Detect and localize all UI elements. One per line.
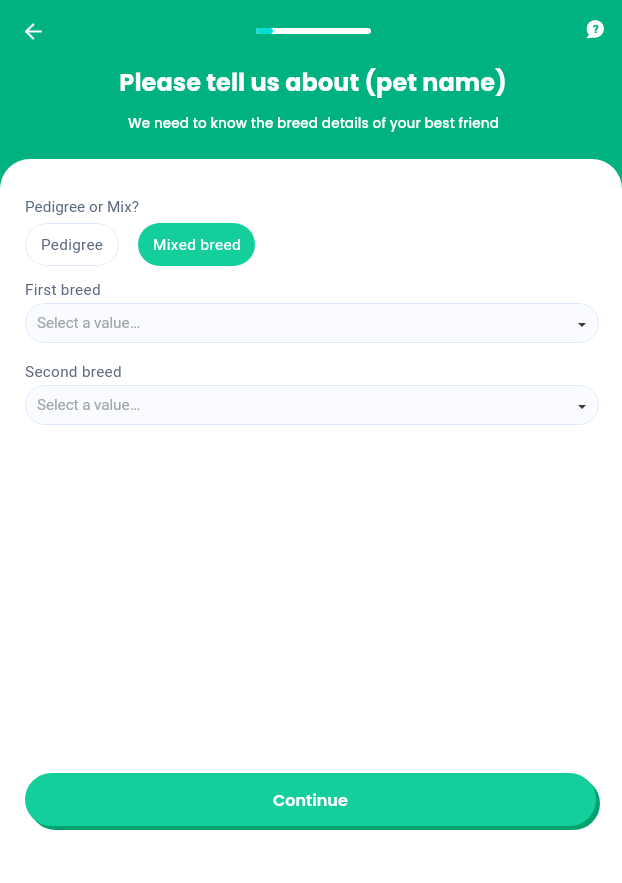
- staticText: Pedigree: [41, 236, 104, 254]
- staticText: ?: [593, 22, 599, 35]
- staticText: Please tell us about (pet name): [119, 66, 507, 100]
- button[interactable]: Mixed breed: [138, 223, 255, 266]
- button[interactable]: Help: [578, 12, 612, 46]
- button[interactable]: Back: [12, 10, 54, 52]
- staticText: Select a value: [37, 396, 130, 414]
- staticText: …: [130, 314, 142, 332]
- button[interactable]: Continue: [25, 773, 596, 826]
- staticText: Pedigree or Mix?: [25, 198, 140, 216]
- staticText: …: [130, 396, 142, 414]
- staticText: We need to know the breed details of you…: [128, 114, 499, 133]
- staticText: Continue: [273, 789, 348, 811]
- staticText: Mixed breed: [153, 236, 241, 254]
- staticText: First breed: [25, 281, 101, 299]
- button[interactable]: Select a value: [25, 303, 599, 343]
- button[interactable]: Select a value: [25, 385, 599, 425]
- staticText: Second breed: [25, 363, 122, 381]
- button[interactable]: Pedigree: [25, 223, 119, 266]
- staticText: Select a value: [37, 314, 130, 332]
